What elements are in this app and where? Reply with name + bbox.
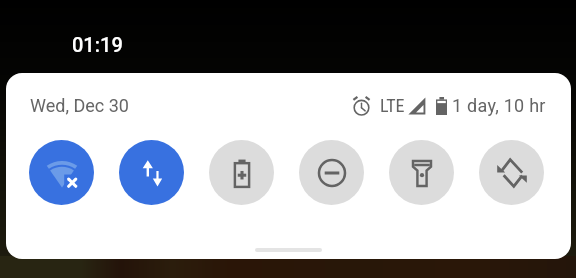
staticText: 01:19 (72, 33, 123, 56)
staticText: 1 day, 10 hr (452, 95, 546, 116)
staticText: LTE (380, 95, 405, 116)
button[interactable]: Mobile data (119, 140, 184, 205)
button[interactable]: Auto-rotate (479, 140, 544, 205)
button[interactable]: Wi-Fi off (29, 140, 94, 205)
button[interactable]: Battery Saver (209, 140, 274, 205)
button[interactable]: Do Not Disturb (299, 140, 364, 205)
staticText: Wed, Dec 30 (30, 95, 129, 116)
button[interactable]: Flashlight (389, 140, 454, 205)
